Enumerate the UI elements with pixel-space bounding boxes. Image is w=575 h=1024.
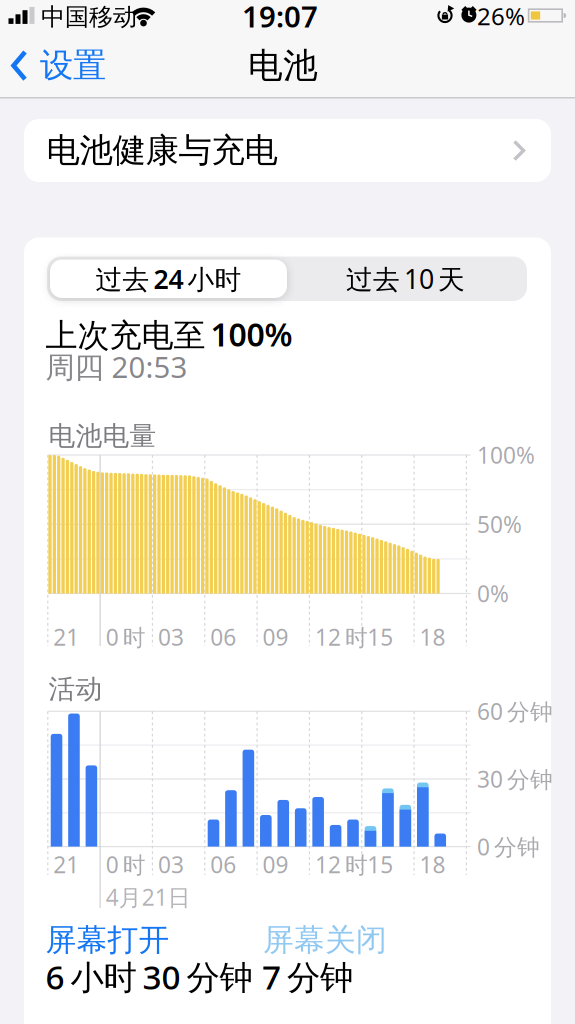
staticText: 周四 20:53: [45, 347, 187, 386]
staticText: 过去 24 小时: [95, 261, 241, 296]
staticText: 电池: [248, 44, 318, 87]
staticText: 0 时: [106, 849, 146, 879]
button[interactable]: 过去 24 小时: [50, 259, 287, 298]
staticText: 15: [367, 849, 393, 879]
staticText: 0 分钟: [477, 831, 540, 862]
button[interactable]: 电池健康与充电: [24, 119, 551, 182]
staticText: 30 分钟: [477, 764, 553, 794]
staticText: 09: [263, 849, 289, 879]
staticText: 03: [158, 622, 184, 652]
staticText: 电池电量: [48, 420, 156, 452]
staticText: 电池健康与充电: [46, 130, 277, 171]
staticText: 03: [158, 849, 184, 879]
staticText: 12 时: [315, 849, 368, 879]
staticText: 15: [367, 622, 393, 652]
staticText: 6 小时 30 分钟: [45, 954, 252, 999]
staticText: 活动: [48, 673, 102, 705]
staticText: 60 分钟: [477, 696, 553, 726]
staticText: 中国移动: [41, 2, 137, 32]
staticText: 100%: [477, 440, 535, 470]
staticText: 上次充电至 100%: [45, 313, 292, 355]
staticText: 设置: [40, 45, 106, 86]
staticText: 50%: [477, 509, 522, 539]
staticText: 屏幕关闭: [263, 921, 387, 959]
staticText: 12 时: [315, 622, 368, 652]
staticText: 09: [263, 622, 289, 652]
button[interactable]: 过去 10 天: [287, 259, 524, 298]
staticText: 21: [53, 622, 79, 652]
staticText: 26%: [477, 0, 525, 32]
staticText: 0%: [477, 578, 509, 608]
staticText: 18: [420, 622, 446, 652]
staticText: 18: [420, 849, 446, 879]
staticText: 7 分钟: [262, 954, 353, 999]
button[interactable]: 设置: [0, 0, 575, 1024]
staticText: 06: [210, 849, 236, 879]
staticText: 屏幕打开: [45, 921, 169, 959]
staticText: 4月21日: [106, 882, 191, 912]
staticText: 19:07: [242, 0, 318, 35]
staticText: 0 时: [106, 622, 146, 652]
staticText: 过去 10 天: [346, 261, 465, 296]
staticText: 06: [210, 622, 236, 652]
staticText: 21: [53, 849, 79, 879]
